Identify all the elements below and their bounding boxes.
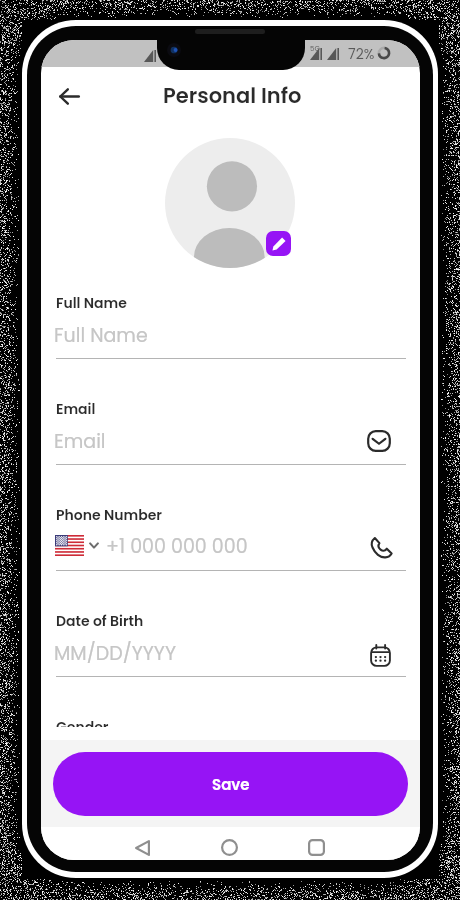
staticText: Full Name [56,293,127,313]
button[interactable]: Call [368,534,394,560]
staticText: 72% [348,44,375,64]
button[interactable]: Edit photo [266,231,291,256]
button[interactable]: Back [125,831,159,860]
staticText: Save [212,774,250,795]
button[interactable]: Full Name [56,296,420,360]
button[interactable]: Pick date [367,642,393,668]
button[interactable]: Back [49,76,90,117]
staticText: Full Name [54,322,148,349]
staticText: Email [56,399,96,419]
button[interactable]: Phone Number [56,508,420,572]
staticText: Phone Number [56,505,162,525]
staticText: +1 000 000 000 [106,533,248,555]
button[interactable]: Email [366,428,392,454]
button[interactable]: Home [212,831,246,860]
staticText: 5G [310,44,320,54]
button[interactable]: Email [56,402,420,466]
staticText: MM/DD/YYYY [54,640,177,667]
button[interactable]: Save [53,752,408,816]
staticText: Personal Info [163,81,302,110]
button[interactable]: Gender [56,717,420,740]
staticText: Email [54,428,106,455]
staticText: Gender [56,717,109,727]
button[interactable]: Date of Birth [56,614,420,678]
button[interactable]: Profile photo [165,138,295,268]
button[interactable]: Recents [299,831,333,860]
staticText: Date of Birth [56,611,144,631]
